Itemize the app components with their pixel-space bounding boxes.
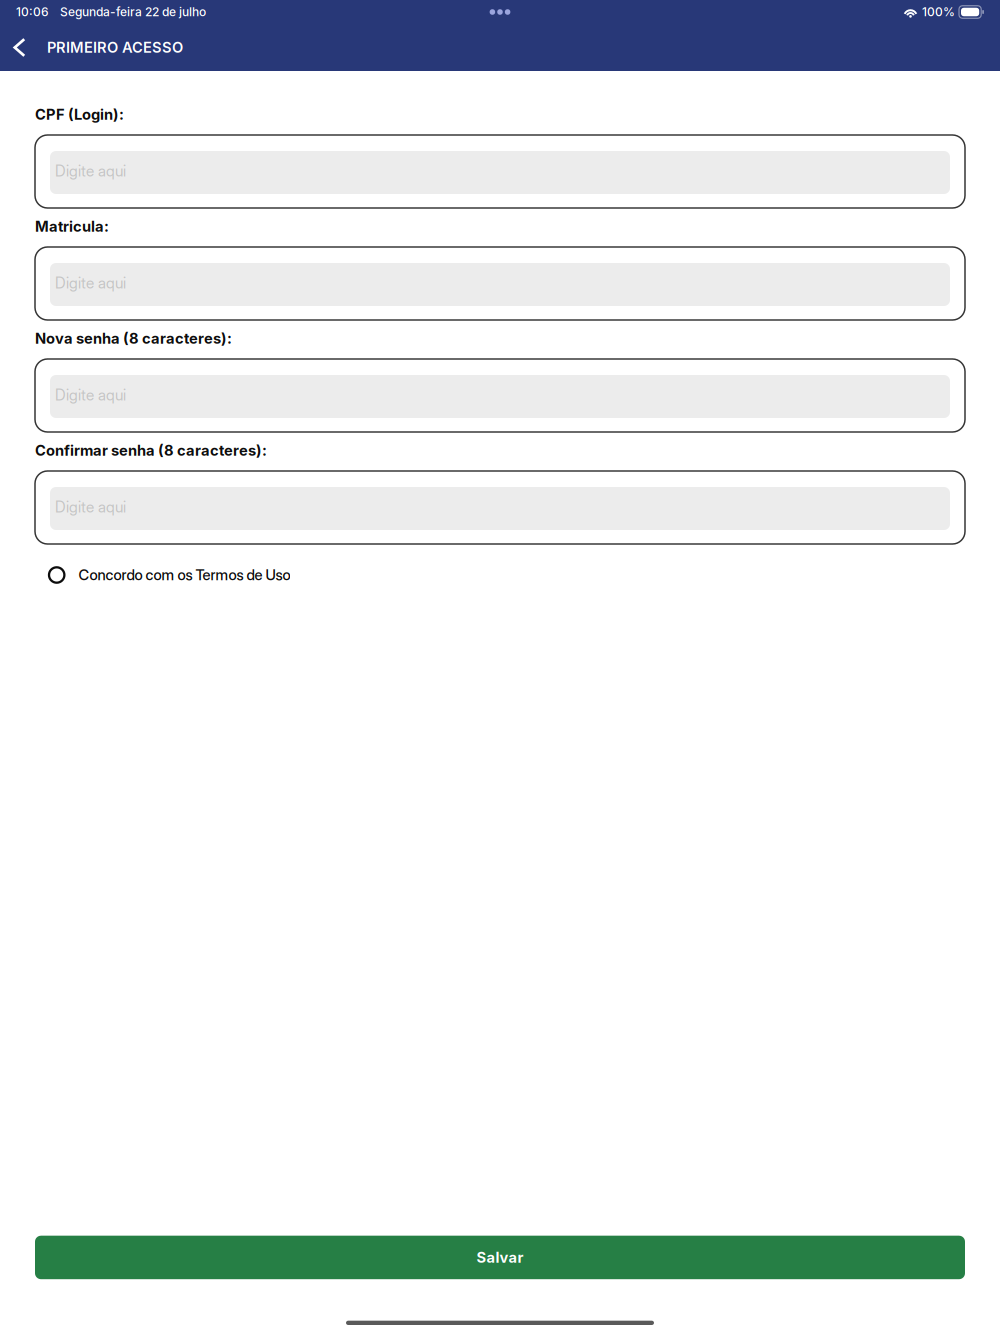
staticText: Matricula: — [35, 218, 109, 235]
staticText: Confirmar senha (8 caracteres): — [35, 442, 267, 459]
button[interactable]: Voltar — [1, 24, 38, 71]
button[interactable]: Confirmar senha (8 caracteres): — [35, 471, 965, 544]
staticText: Salvar — [476, 1249, 523, 1266]
staticText: Digite aqui — [55, 162, 126, 180]
staticText: Concordo com os Termos de Uso — [78, 566, 290, 584]
button[interactable]: Matricula: — [35, 247, 965, 320]
button[interactable]: Concordo com os Termos de Uso — [35, 560, 965, 590]
staticText: 100% — [922, 5, 955, 19]
staticText: Nova senha (8 caracteres): — [35, 330, 232, 347]
staticText: Segunda-feira 22 de julho — [60, 5, 206, 19]
staticText: 10:06 — [16, 5, 49, 19]
button[interactable]: Nova senha (8 caracteres): — [35, 359, 965, 432]
staticText: Digite aqui — [55, 274, 126, 292]
staticText: Digite aqui — [55, 498, 126, 516]
staticText: CPF (Login): — [35, 106, 124, 123]
staticText: Digite aqui — [55, 386, 126, 404]
staticText: PRIMEIRO ACESSO — [47, 39, 183, 56]
button[interactable]: Salvar — [35, 1236, 965, 1279]
button[interactable]: CPF (Login): — [35, 135, 965, 208]
